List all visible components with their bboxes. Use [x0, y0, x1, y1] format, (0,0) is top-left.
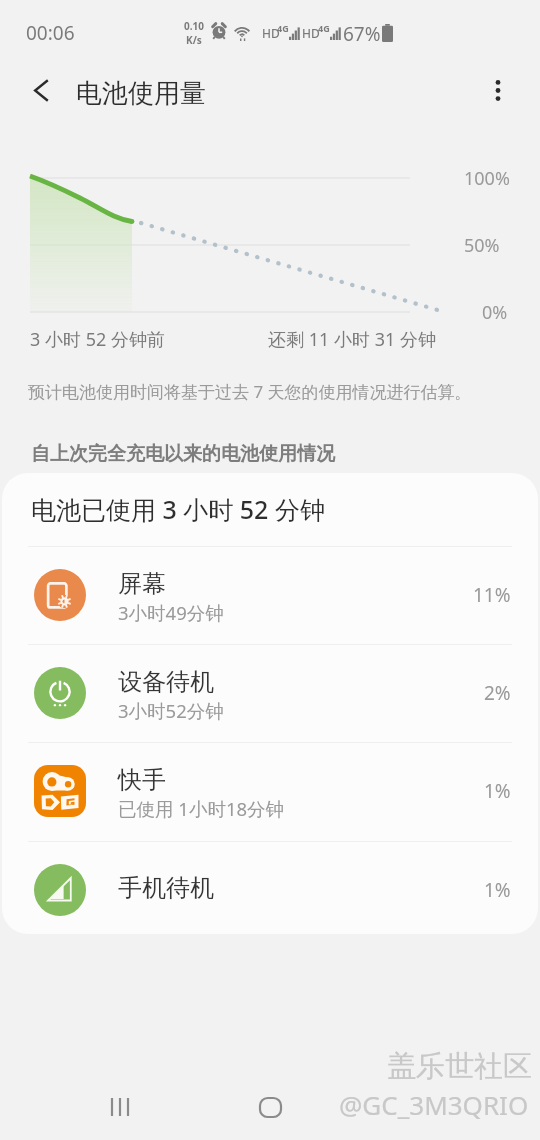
staticText: 50% — [464, 233, 500, 258]
staticText: 盖乐世社区 — [387, 1048, 532, 1085]
staticText: HD — [262, 25, 280, 41]
staticText: @GC_3M3QRIO — [339, 1087, 529, 1122]
button[interactable]: More options — [475, 67, 521, 113]
staticText: 3小时49分钟 — [118, 600, 224, 625]
staticText: 0% — [482, 300, 508, 325]
staticText: 电池已使用 3 小时 52 分钟 — [31, 492, 325, 526]
staticText: 快手 — [118, 765, 166, 795]
staticText: 67% — [343, 21, 381, 47]
button[interactable]: 设备待机 — [2, 647, 538, 742]
staticText: 100% — [464, 166, 510, 191]
staticText: 预计电池使用时间将基于过去 7 天您的使用情况进行估算。 — [28, 380, 472, 403]
staticText: HD — [302, 25, 320, 41]
button[interactable]: 屏幕 — [2, 549, 538, 644]
staticText: 3 小时 52 分钟前 — [30, 327, 165, 352]
button[interactable]: Recents — [90, 1077, 150, 1137]
button[interactable]: Back — [390, 1077, 450, 1137]
staticText: 2% — [484, 680, 511, 706]
button[interactable]: Home — [240, 1077, 300, 1137]
staticText: 3小时52分钟 — [118, 698, 224, 723]
staticText: 1% — [484, 778, 511, 804]
button[interactable]: Back — [18, 67, 64, 113]
staticText: 1% — [484, 877, 511, 903]
staticText: 自上次完全充电以来的电池使用情况 — [31, 442, 335, 466]
staticText: 0.10 — [184, 19, 204, 33]
staticText: 手机待机 — [118, 873, 214, 903]
staticText: 00:06 — [26, 20, 75, 46]
staticText: K/s — [186, 33, 202, 47]
staticText: 4G — [277, 22, 289, 34]
staticText: 设备待机 — [118, 667, 214, 697]
staticText: 11% — [473, 582, 511, 608]
button[interactable]: 快手 — [2, 745, 538, 840]
staticText: 电池使用量 — [76, 77, 206, 110]
button[interactable]: 手机待机 — [2, 844, 538, 934]
staticText: 屏幕 — [118, 569, 166, 599]
staticText: 还剩 11 小时 31 分钟 — [268, 327, 436, 352]
staticText: 4G — [318, 22, 330, 34]
staticText: 已使用 1小时18分钟 — [118, 796, 285, 821]
